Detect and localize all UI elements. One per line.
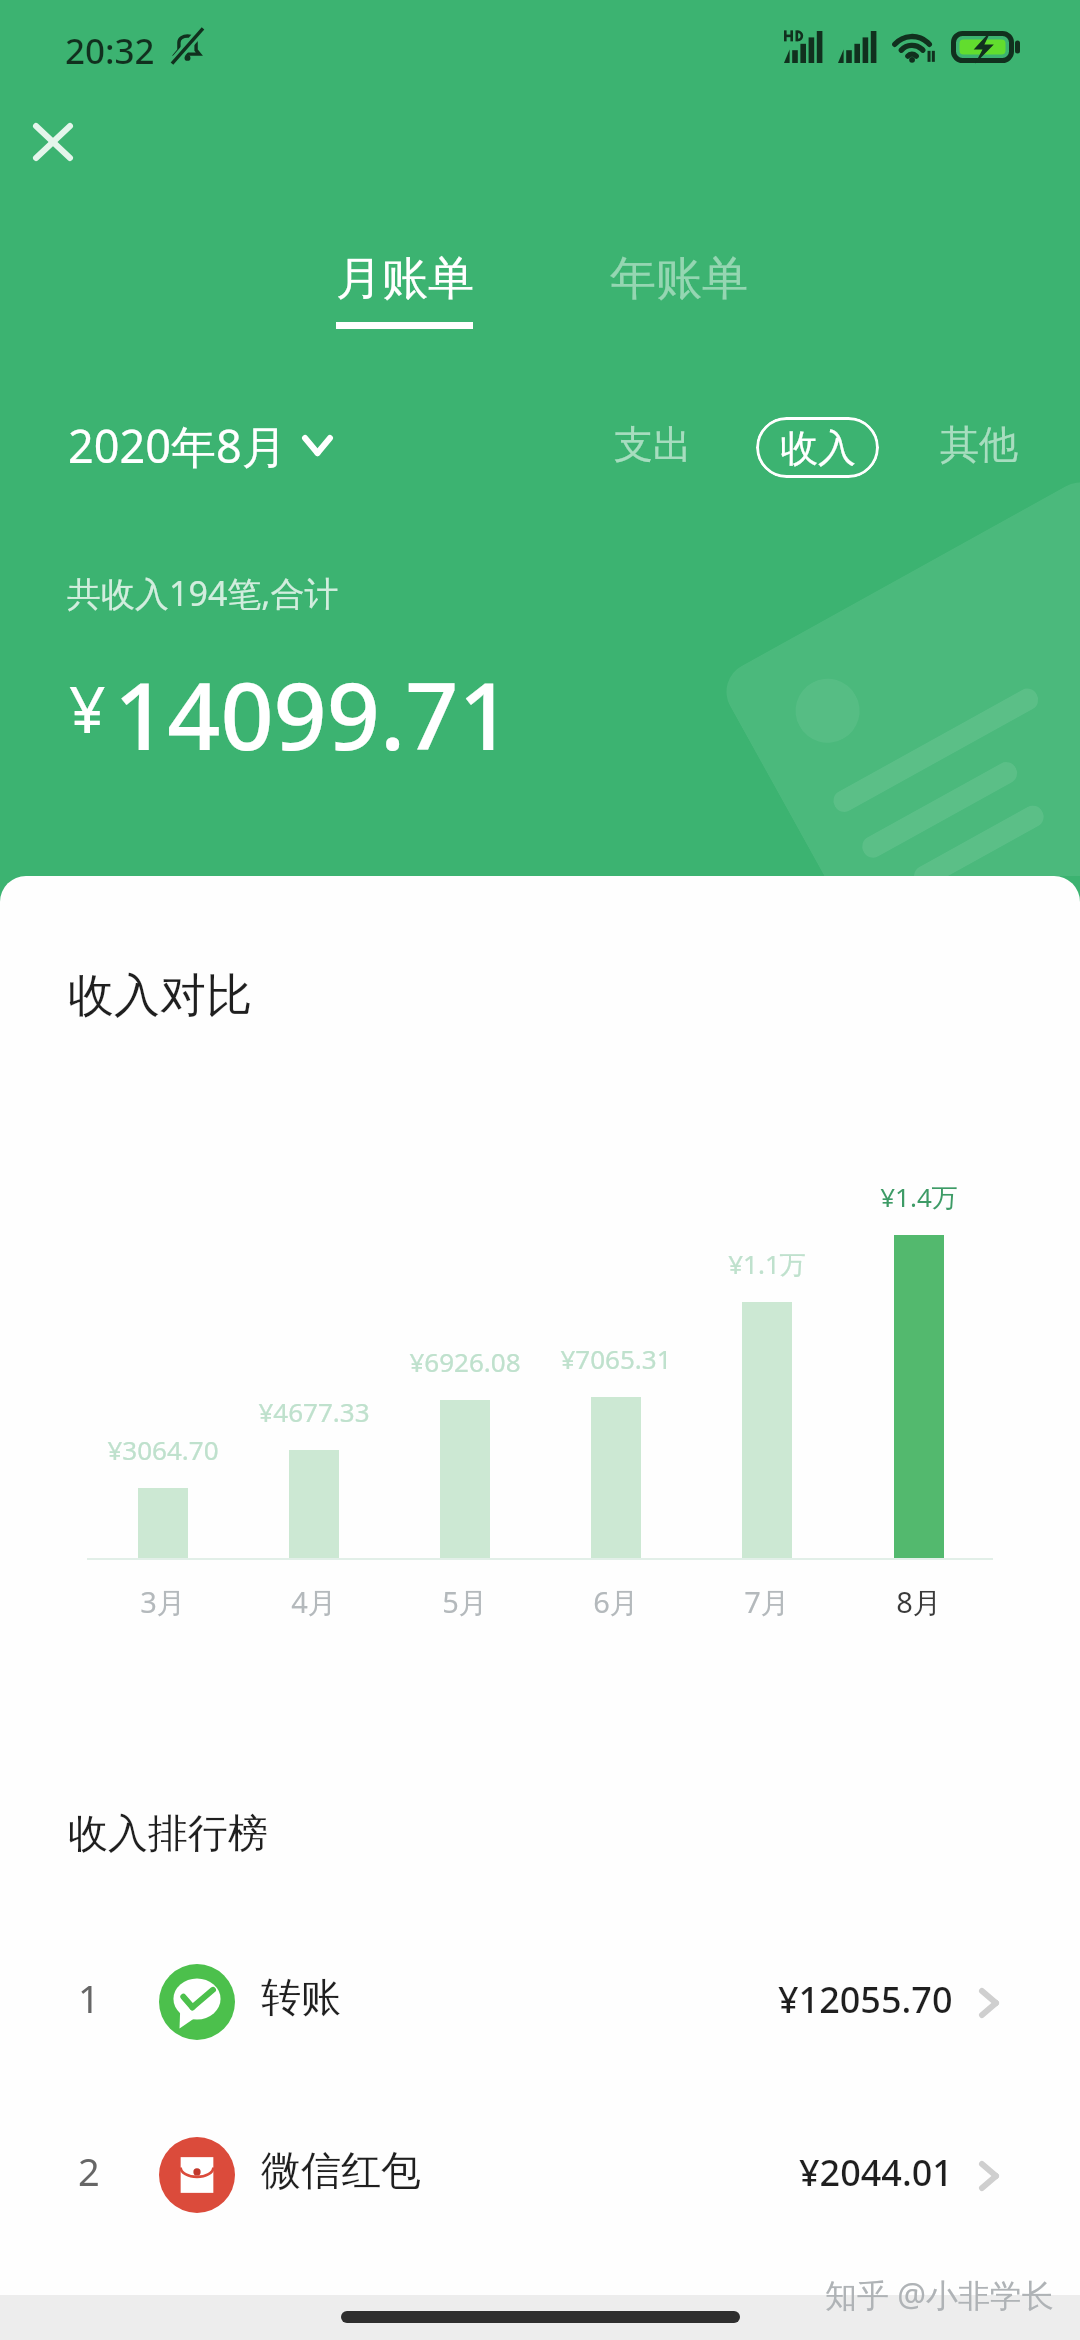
staticText: 4月 [291, 1582, 337, 1622]
staticText: 知乎 @小非学长 [825, 2273, 1055, 2317]
staticText: ¥6926.08 [409, 1344, 521, 1379]
staticText: 3月 [140, 1582, 186, 1622]
staticText: ¥1.1万 [728, 1246, 806, 1282]
staticText: ¥4677.33 [258, 1394, 370, 1429]
button[interactable]: 其他 [926, 406, 1031, 482]
staticText: 收入对比 [68, 967, 252, 1025]
staticText: 8月 [896, 1582, 942, 1622]
button[interactable]: 支出 [600, 406, 705, 482]
button[interactable]: Close [7, 96, 99, 188]
staticText: 1 [78, 1972, 100, 2024]
staticText: 收入 [780, 424, 856, 472]
staticText: ¥2044.01 [799, 2148, 953, 2197]
button[interactable]: 2020年8月 [68, 401, 332, 489]
button[interactable]: 收入 [756, 417, 879, 478]
staticText: 5月 [442, 1582, 488, 1622]
button[interactable]: 1 [0, 1916, 1080, 2088]
staticText: 支出 [614, 420, 692, 469]
staticText: 7月 [744, 1582, 790, 1622]
staticText: 月账单 [336, 250, 474, 308]
staticText: 14099.71 [114, 651, 512, 778]
staticText: 20:32 [65, 27, 155, 75]
staticText: 共收入194笔,合计 [67, 570, 339, 616]
staticText: 年账单 [610, 250, 748, 308]
staticText: ¥7065.31 [560, 1341, 672, 1376]
staticText: 微信红包 [261, 2145, 421, 2195]
button[interactable]: 年账单 [586, 243, 770, 331]
staticText: ¥1.4万 [880, 1179, 958, 1215]
staticText: 转账 [261, 1972, 341, 2022]
staticText: 收入排行榜 [68, 1808, 268, 1858]
staticText: ¥3064.70 [107, 1432, 219, 1467]
button[interactable]: 月账单 [312, 243, 496, 343]
staticText: 6月 [593, 1582, 639, 1622]
button[interactable]: 2 [0, 2089, 1080, 2261]
staticText: ¥ [69, 665, 106, 752]
staticText: 其他 [940, 420, 1018, 469]
staticText: 2020年8月 [68, 415, 287, 476]
staticText: 2 [78, 2145, 100, 2197]
staticText: ¥12055.70 [778, 1975, 953, 2024]
